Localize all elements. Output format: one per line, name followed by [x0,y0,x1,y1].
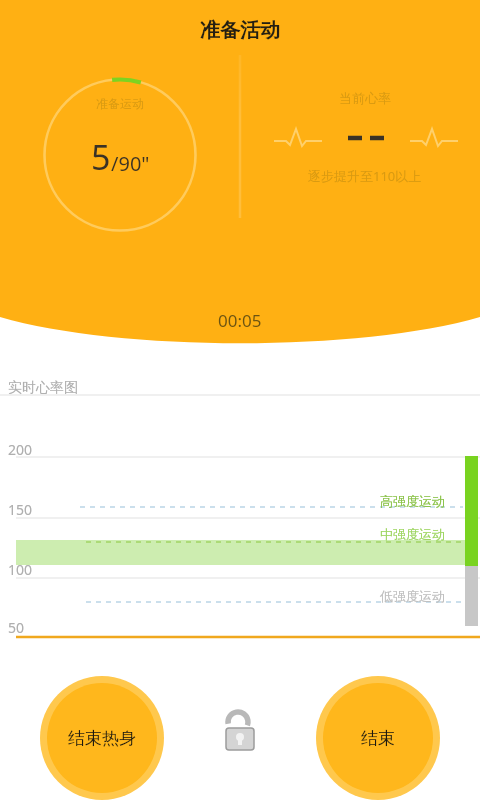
staticText: 高强度运动 [380,493,445,509]
staticText: 中强度运动 [380,526,445,542]
staticText: 150 [8,500,33,519]
staticText: 100 [8,560,33,579]
staticText: 结束热身 [68,728,136,749]
staticText: 逐步提升至110以上 [308,167,422,185]
staticText: 实时心率图 [8,379,78,397]
staticText: /90" [111,150,150,177]
staticText: 低强度运动 [380,588,445,604]
staticText: 准备活动 [200,18,280,43]
staticText: 00:05 [218,309,262,332]
staticText: 5 [91,134,111,180]
staticText: 准备运动 [96,96,144,111]
staticText: 200 [8,440,33,459]
staticText: 50 [8,618,25,637]
button[interactable]: Unlock [216,706,264,754]
staticText: 结束 [361,728,395,749]
button[interactable]: 结束 [316,676,440,800]
staticText: 当前心率 [339,90,391,106]
button[interactable]: 结束热身 [40,676,164,800]
